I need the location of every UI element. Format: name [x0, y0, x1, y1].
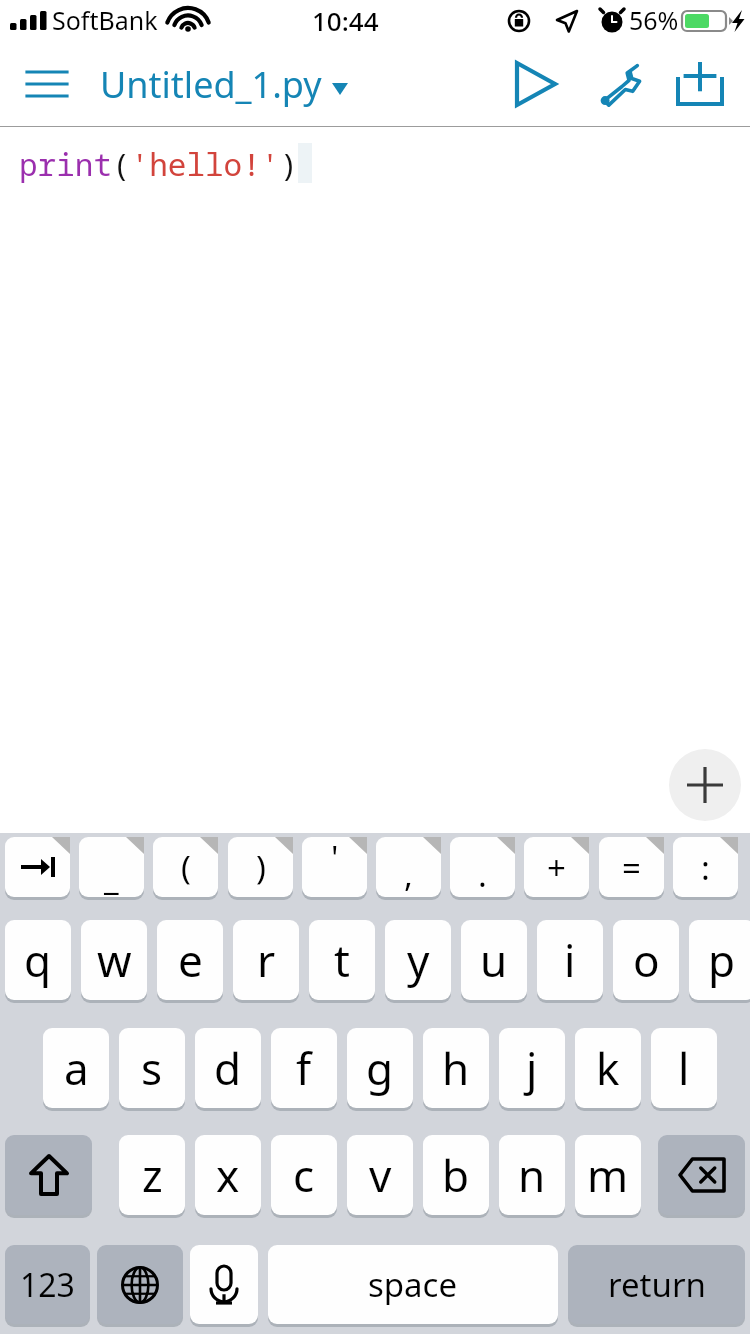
staticText: b: [442, 1145, 470, 1205]
button[interactable]: Tools: [582, 48, 654, 120]
staticText: x: [216, 1145, 240, 1205]
button[interactable]: s: [119, 1028, 185, 1108]
staticText: space: [368, 1262, 458, 1307]
button[interactable]: t: [309, 920, 375, 1000]
staticText: g: [366, 1038, 394, 1098]
staticText: i: [564, 930, 576, 990]
staticText: k: [596, 1038, 620, 1098]
staticText: ,: [404, 852, 413, 897]
staticText: n: [518, 1145, 546, 1205]
staticText: p: [708, 930, 736, 990]
staticText: ): [256, 845, 266, 890]
staticText: u: [480, 930, 508, 990]
button[interactable]: ,: [376, 837, 441, 897]
staticText: .: [478, 852, 487, 897]
button[interactable]: o: [613, 920, 679, 1000]
button[interactable]: l: [651, 1028, 717, 1108]
button[interactable]: r: [233, 920, 299, 1000]
staticText: w: [97, 930, 132, 990]
button[interactable]: m: [575, 1135, 641, 1215]
button[interactable]: [5, 837, 70, 897]
button[interactable]: v: [347, 1135, 413, 1215]
button[interactable]: e: [157, 920, 223, 1000]
button[interactable]: n: [499, 1135, 565, 1215]
staticText: t: [334, 930, 350, 990]
button[interactable]: g: [347, 1028, 413, 1108]
button[interactable]: +: [524, 837, 589, 897]
button[interactable]: .: [450, 837, 515, 897]
button[interactable]: y: [385, 920, 451, 1000]
staticText: d: [214, 1038, 242, 1098]
staticText: a: [64, 1038, 89, 1098]
button[interactable]: k: [575, 1028, 641, 1108]
button[interactable]: p: [689, 920, 750, 1000]
staticText: +: [547, 845, 566, 890]
button[interactable]: Run: [500, 48, 572, 120]
staticText: m: [587, 1145, 629, 1205]
staticText: o: [633, 930, 660, 990]
button[interactable]: q: [5, 920, 71, 1000]
staticText: s: [141, 1038, 163, 1098]
button[interactable]: Untitled_1.py: [100, 60, 348, 109]
button[interactable]: Add snippet: [669, 749, 741, 821]
button[interactable]: c: [271, 1135, 337, 1215]
staticText: z: [142, 1145, 163, 1205]
staticText: e: [178, 930, 203, 990]
staticText: j: [526, 1038, 538, 1098]
staticText: 56%: [629, 3, 679, 37]
button[interactable]: space: [268, 1245, 558, 1324]
staticText: y: [407, 930, 430, 990]
button[interactable]: Shift: [5, 1135, 92, 1215]
staticText: :: [701, 845, 710, 890]
button[interactable]: j: [499, 1028, 565, 1108]
button[interactable]: _: [79, 837, 144, 897]
button[interactable]: (: [153, 837, 218, 897]
button[interactable]: i: [537, 920, 603, 1000]
button[interactable]: u: [461, 920, 527, 1000]
staticText: =: [622, 845, 641, 890]
button[interactable]: d: [195, 1028, 261, 1108]
button[interactable]: f: [271, 1028, 337, 1108]
button[interactable]: return: [568, 1245, 745, 1324]
button[interactable]: =: [599, 837, 664, 897]
button[interactable]: b: [423, 1135, 489, 1215]
button[interactable]: h: [423, 1028, 489, 1108]
button[interactable]: x: [195, 1135, 261, 1215]
button[interactable]: z: [119, 1135, 185, 1215]
button[interactable]: Dictate: [190, 1245, 258, 1324]
button[interactable]: :: [673, 837, 738, 897]
staticText: Untitled_1.py: [100, 60, 322, 109]
staticText: return: [608, 1262, 706, 1307]
staticText: l: [678, 1038, 690, 1098]
staticText: (: [181, 845, 191, 890]
staticText: h: [442, 1038, 470, 1098]
staticText: c: [293, 1145, 315, 1205]
button[interactable]: ): [228, 837, 293, 897]
button[interactable]: Add: [664, 48, 736, 120]
button[interactable]: Backspace: [658, 1135, 745, 1215]
staticText: v: [369, 1145, 392, 1205]
staticText: _: [104, 855, 119, 900]
staticText: ': [331, 835, 339, 880]
staticText: print('hello!'): [19, 143, 298, 185]
staticText: r: [257, 930, 276, 990]
button[interactable]: Menu: [14, 51, 80, 117]
staticText: 123: [20, 1263, 75, 1307]
button[interactable]: 123: [5, 1245, 90, 1324]
staticText: SoftBank: [52, 3, 158, 37]
staticText: q: [24, 930, 52, 990]
button[interactable]: Change keyboard: [97, 1245, 183, 1324]
button[interactable]: ': [302, 837, 367, 897]
button[interactable]: a: [43, 1028, 109, 1108]
button[interactable]: w: [81, 920, 147, 1000]
staticText: f: [296, 1038, 312, 1098]
staticText: 10:44: [312, 3, 379, 38]
